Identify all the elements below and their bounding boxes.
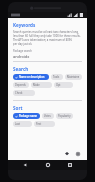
button[interactable]: Recents [65, 160, 75, 170]
staticText: less than 60 full (they only take 1000 f… [13, 34, 81, 38]
button[interactable]: Layers [63, 150, 71, 158]
button[interactable]: Name or description [13, 74, 49, 80]
button[interactable]: First submitted [34, 121, 55, 127]
staticText: Last updated [15, 122, 30, 126]
staticText: Votes [44, 114, 51, 118]
staticText: Package search [13, 49, 32, 53]
staticText: Search [13, 66, 29, 72]
button[interactable]: Maintainer [65, 74, 82, 80]
staticText: The API uses tokenization; a maximum of … [13, 38, 82, 42]
staticText: Search queries must be at least two char… [13, 30, 79, 34]
button[interactable]: Last updated [13, 121, 32, 127]
staticText: androidx [13, 54, 30, 59]
button[interactable]: Popularity [56, 113, 73, 119]
staticText: Sort [13, 105, 23, 111]
button[interactable]: Home [43, 160, 53, 170]
staticText: Opt depends [56, 83, 71, 87]
staticText: Name or description [19, 75, 45, 79]
button[interactable]: Make depends [31, 82, 52, 88]
button[interactable]: Check depends [13, 90, 35, 96]
staticText: Maintainer [67, 75, 80, 79]
staticText: Keywords [13, 22, 36, 28]
staticText: Check depends [15, 91, 33, 95]
button[interactable]: Package name [13, 113, 40, 119]
staticText: Depends [15, 83, 26, 87]
staticText: First submitted [36, 122, 53, 126]
button[interactable]: Settings [74, 150, 82, 158]
staticText: Popularity [58, 114, 71, 118]
button[interactable]: Votes [42, 113, 54, 119]
staticText: Package name [19, 114, 38, 118]
button[interactable]: Opt depends [54, 82, 73, 88]
staticText: per day just ok. [13, 42, 33, 46]
button[interactable]: Back [20, 160, 30, 170]
staticText: Make depends [33, 83, 50, 87]
button[interactable]: Tools [51, 74, 63, 80]
button[interactable]: Depends [13, 82, 29, 88]
staticText: Tools [53, 75, 60, 79]
